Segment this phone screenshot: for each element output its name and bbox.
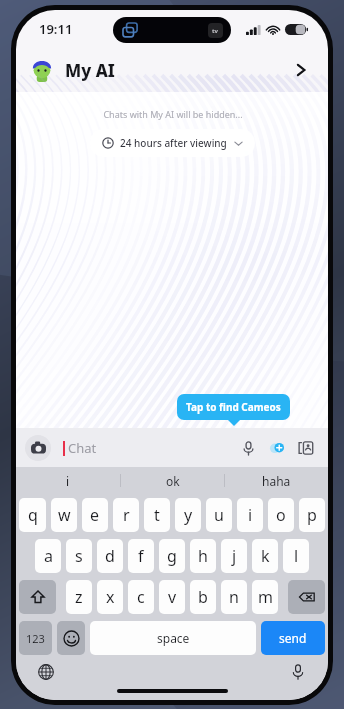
button[interactable]: Camera xyxy=(25,435,51,461)
button[interactable]: i xyxy=(16,467,120,494)
staticText: ok xyxy=(166,473,180,489)
button[interactable]: b xyxy=(190,580,216,614)
staticText: p xyxy=(307,504,317,526)
staticText: tv xyxy=(212,27,219,35)
button[interactable]: z xyxy=(66,580,92,614)
button[interactable]: Change keyboard xyxy=(34,660,58,684)
button[interactable]: y xyxy=(175,498,201,532)
button[interactable]: Stickers xyxy=(264,435,290,461)
button[interactable]: send xyxy=(261,621,325,655)
button[interactable]: l xyxy=(283,539,309,573)
staticText: y xyxy=(184,504,193,526)
staticText: e xyxy=(90,504,100,526)
button[interactable]: v xyxy=(159,580,185,614)
staticText: Chat xyxy=(68,439,97,457)
button[interactable]: m xyxy=(252,580,278,614)
staticText: send xyxy=(279,630,307,646)
button[interactable]: Chat xyxy=(63,439,235,457)
staticText: My AI xyxy=(65,59,115,82)
button[interactable]: r xyxy=(113,498,139,532)
button[interactable]: Emoji xyxy=(57,621,85,655)
button[interactable]: x xyxy=(97,580,123,614)
button[interactable]: o xyxy=(268,498,294,532)
staticText: u xyxy=(214,504,224,526)
button[interactable]: Shift xyxy=(19,580,56,614)
staticText: o xyxy=(276,504,286,526)
button[interactable]: w xyxy=(51,498,77,532)
staticText: f xyxy=(138,545,144,567)
staticText: b xyxy=(198,586,208,608)
button[interactable]: My AI xyxy=(16,48,328,92)
staticText: l xyxy=(294,545,299,567)
staticText: v xyxy=(168,586,177,608)
staticText: m xyxy=(258,586,273,608)
button[interactable]: q xyxy=(19,498,46,532)
button[interactable]: Dictation xyxy=(286,660,310,684)
staticText: 123 xyxy=(26,631,45,646)
staticText: g xyxy=(167,545,177,567)
button[interactable]: e xyxy=(82,498,108,532)
staticText: r xyxy=(123,504,130,526)
button[interactable]: haha xyxy=(225,467,328,494)
button[interactable]: s xyxy=(66,539,92,573)
staticText: w xyxy=(58,504,71,526)
staticText: k xyxy=(261,545,270,567)
staticText: h xyxy=(198,545,208,567)
staticText: i xyxy=(248,504,253,526)
button[interactable]: g xyxy=(159,539,185,573)
button[interactable]: 123 xyxy=(19,621,52,655)
button[interactable]: n xyxy=(221,580,247,614)
button[interactable]: p xyxy=(299,498,325,532)
button[interactable]: i xyxy=(237,498,263,532)
button[interactable]: k xyxy=(252,539,278,573)
button[interactable]: Tap to find Cameos xyxy=(177,394,290,420)
staticText: Chats with My AI will be hidden... xyxy=(103,108,243,120)
staticText: s xyxy=(75,545,83,567)
staticText: Tap to find Cameos xyxy=(186,400,281,414)
staticText: 24 hours after viewing xyxy=(120,136,227,150)
staticText: i xyxy=(66,473,70,489)
button[interactable]: ok xyxy=(121,467,224,494)
staticText: n xyxy=(229,586,239,608)
button[interactable]: j xyxy=(221,539,247,573)
staticText: z xyxy=(75,586,83,608)
staticText: j xyxy=(232,545,237,567)
button[interactable]: f xyxy=(128,539,154,573)
button[interactable]: 24 hours after viewing xyxy=(90,129,255,157)
button[interactable]: h xyxy=(190,539,216,573)
staticText: space xyxy=(157,630,190,646)
button[interactable]: t xyxy=(144,498,170,532)
button[interactable]: c xyxy=(128,580,154,614)
staticText: c xyxy=(137,586,145,608)
staticText: x xyxy=(106,586,115,608)
staticText: haha xyxy=(262,473,291,489)
staticText: d xyxy=(105,545,115,567)
button[interactable]: u xyxy=(206,498,232,532)
button[interactable]: Open profile xyxy=(288,57,314,83)
staticText: t xyxy=(154,504,160,526)
button[interactable]: Cameos xyxy=(293,435,319,461)
button[interactable]: space xyxy=(90,621,256,655)
staticText: a xyxy=(44,545,53,567)
button[interactable]: Backspace xyxy=(288,580,325,614)
staticText: q xyxy=(28,504,38,526)
button[interactable]: a xyxy=(35,539,61,573)
button[interactable]: Voice message xyxy=(235,435,261,461)
staticText: 19:11 xyxy=(39,20,73,38)
button[interactable]: d xyxy=(97,539,123,573)
